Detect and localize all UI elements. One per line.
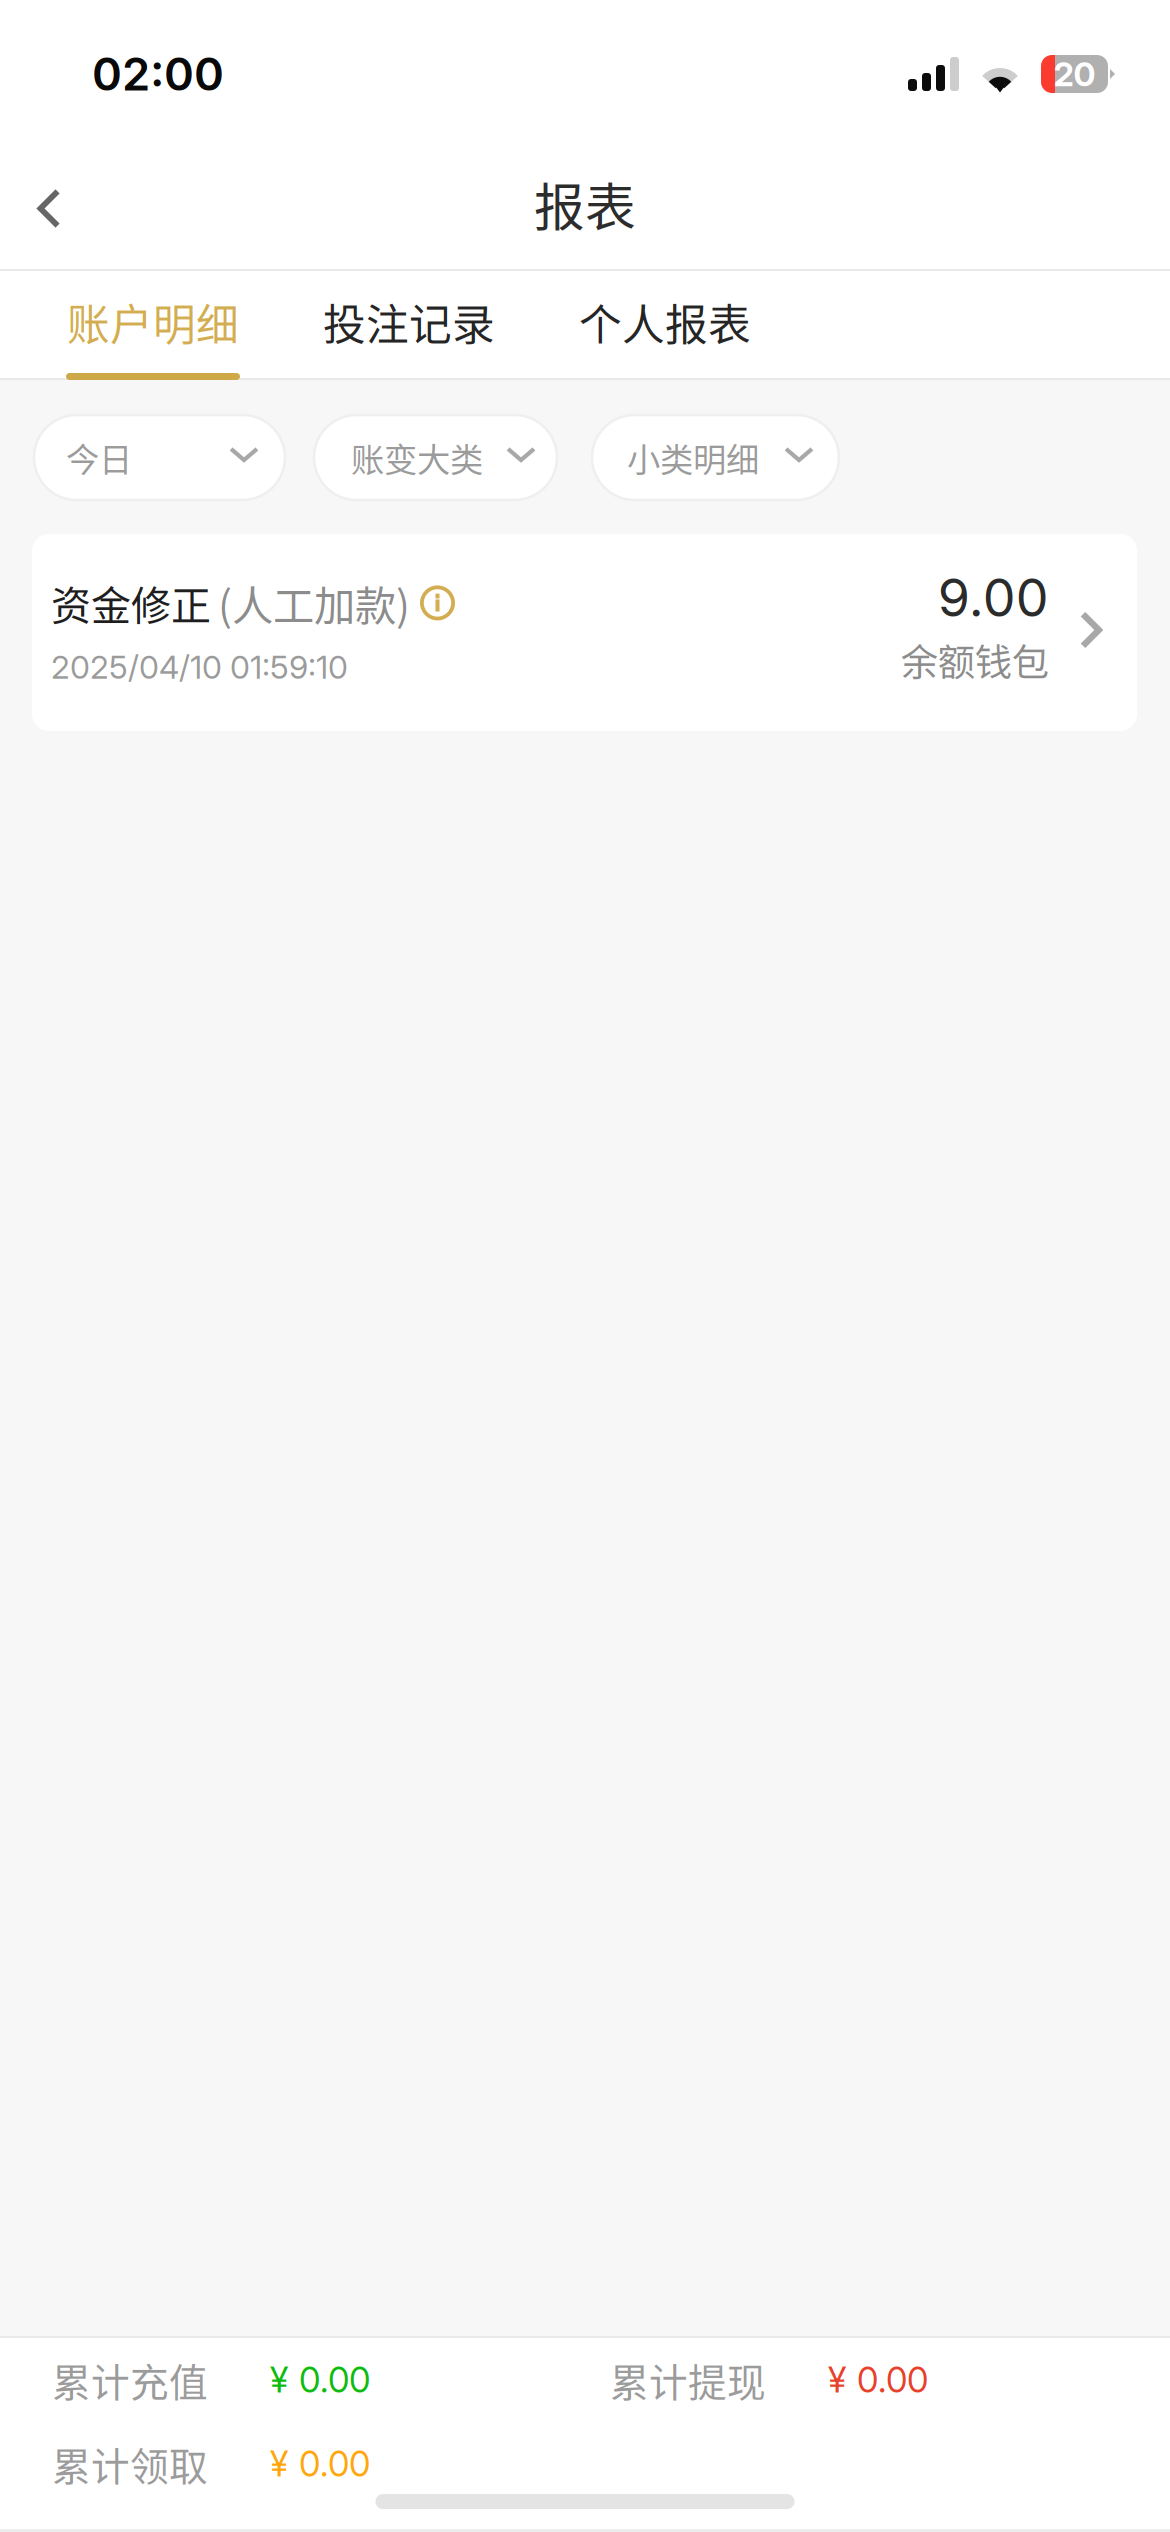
staticText: 账户明细 [67, 291, 239, 353]
button[interactable]: 今日 [34, 415, 285, 500]
staticText: 报表 [534, 167, 636, 241]
staticText: (人工加款) [218, 573, 410, 633]
staticText: 累计充值 [52, 2352, 208, 2408]
staticText: 2025/04/10 01:59:10 [51, 648, 348, 687]
staticText: 账变大类 [351, 433, 483, 482]
button[interactable]: 账变大类 [314, 415, 557, 500]
button[interactable]: 个人报表 [578, 271, 752, 378]
staticText: 资金修正 [51, 574, 211, 632]
staticText: 20 [1053, 54, 1095, 94]
staticText: 今日 [66, 433, 132, 482]
button[interactable]: Back [0, 148, 98, 269]
staticText: 投注记录 [323, 291, 495, 353]
staticText: 02:00 [92, 47, 224, 101]
staticText: ¥ [270, 2359, 288, 2401]
staticText: 0.00 [299, 2443, 370, 2485]
staticText: 小类明细 [627, 433, 759, 482]
staticText: 0.00 [857, 2359, 928, 2401]
staticText: ¥ [270, 2443, 288, 2485]
staticText: 个人报表 [579, 291, 751, 353]
button[interactable]: 账户明细 [66, 271, 240, 378]
staticText: 累计提现 [610, 2352, 766, 2408]
staticText: 余额钱包 [901, 633, 1049, 687]
staticText: 9.00 [938, 566, 1049, 629]
staticText: ¥ [828, 2359, 846, 2401]
staticText: 累计领取 [52, 2436, 208, 2492]
button[interactable]: 小类明细 [592, 415, 839, 500]
button[interactable]: 投注记录 [322, 271, 496, 378]
staticText: 0.00 [299, 2359, 370, 2401]
